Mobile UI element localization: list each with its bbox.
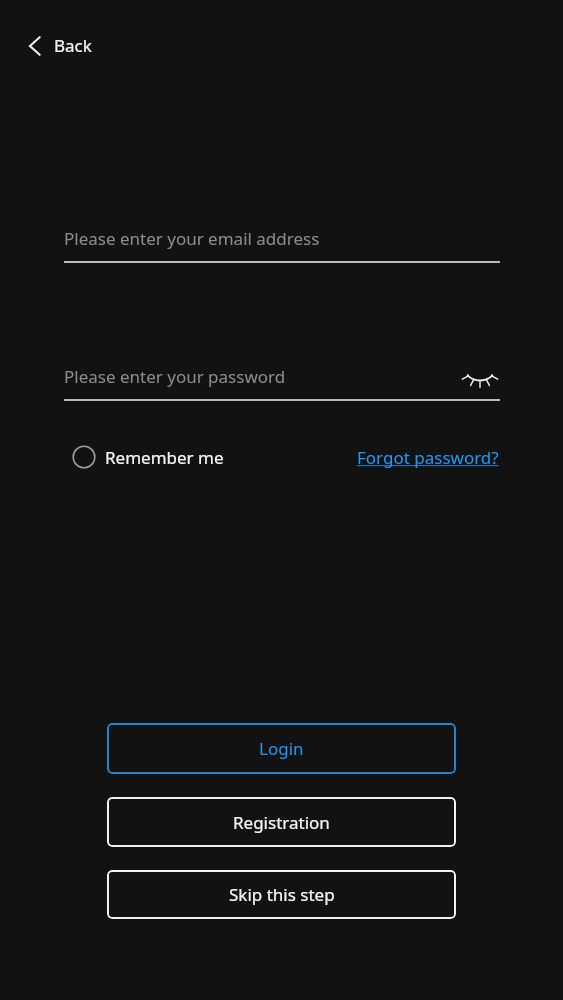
button[interactable]: Show password [460,356,500,396]
staticText: Skip this step [229,883,335,906]
button[interactable]: Remember me [70,441,226,473]
staticText: Forgot password? [357,446,499,469]
button[interactable]: Back [22,30,96,61]
button[interactable]: Please enter your password [64,353,500,399]
button[interactable]: Registration [107,797,456,847]
button[interactable]: Please enter your email address [64,215,500,261]
staticText: Back [54,34,92,57]
staticText: Registration [233,811,330,834]
button[interactable]: Login [107,723,456,774]
staticText: Please enter your password [64,365,286,388]
staticText: Login [259,737,304,760]
staticText: Please enter your email address [64,227,320,250]
other: Back [26,35,44,57]
staticText: Remember me [105,446,224,469]
button[interactable]: Skip this step [107,870,456,919]
button[interactable]: Forgot password? [355,442,501,473]
